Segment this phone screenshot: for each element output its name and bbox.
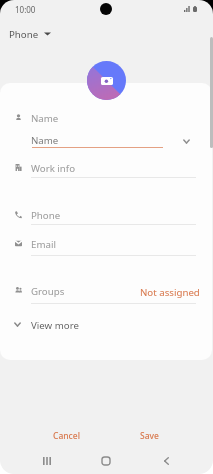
staticText: Groups	[31, 285, 65, 298]
button[interactable]: View more	[0, 318, 212, 334]
staticText: Not assigned	[140, 286, 200, 299]
staticText: Phone	[31, 209, 61, 222]
button[interactable]: Cancel	[28, 423, 104, 449]
staticText: Cancel	[53, 430, 80, 442]
staticText: Name	[31, 134, 59, 147]
staticText: Name	[31, 112, 59, 125]
button[interactable]: Back	[155, 450, 177, 471]
button[interactable]: Groups	[0, 284, 212, 300]
button[interactable]: Recent apps	[36, 450, 58, 471]
staticText: Phone	[9, 28, 39, 41]
button[interactable]: Home	[95, 450, 117, 471]
button[interactable]: Save	[111, 423, 187, 449]
staticText: Work info	[31, 162, 76, 175]
button[interactable]: Phone	[9, 26, 51, 42]
button[interactable]: Work info	[0, 161, 212, 177]
button[interactable]: Phone	[0, 208, 212, 224]
staticText: Email	[31, 238, 56, 251]
staticText: View more	[31, 319, 79, 332]
button[interactable]: Change profile photo	[87, 61, 126, 100]
button[interactable]: Name	[0, 133, 212, 149]
staticText: 10:00	[15, 4, 36, 15]
button[interactable]: Email	[0, 237, 212, 253]
button[interactable]: Name	[0, 111, 212, 127]
staticText: Save	[140, 430, 159, 442]
